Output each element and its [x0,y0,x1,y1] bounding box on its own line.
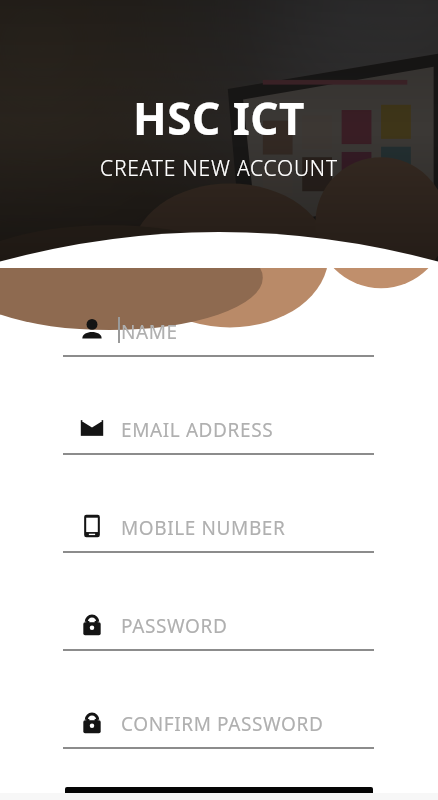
button[interactable]: PASSWORD [0,595,438,693]
button[interactable]: MOBILE NUMBER [0,497,438,595]
staticText: HSC ICT [133,88,305,148]
button[interactable]: NAME [0,301,438,399]
staticText: MOBILE NUMBER [121,515,286,541]
staticText: NAME [121,319,178,345]
button[interactable]: Sign up [65,787,373,800]
staticText: PASSWORD [121,613,228,639]
staticText: CREATE NEW ACCOUNT [100,154,338,183]
button[interactable]: EMAIL ADDRESS [0,399,438,497]
button[interactable]: CONFIRM PASSWORD [0,693,438,791]
staticText: CONFIRM PASSWORD [121,711,324,737]
staticText: EMAIL ADDRESS [121,417,274,443]
